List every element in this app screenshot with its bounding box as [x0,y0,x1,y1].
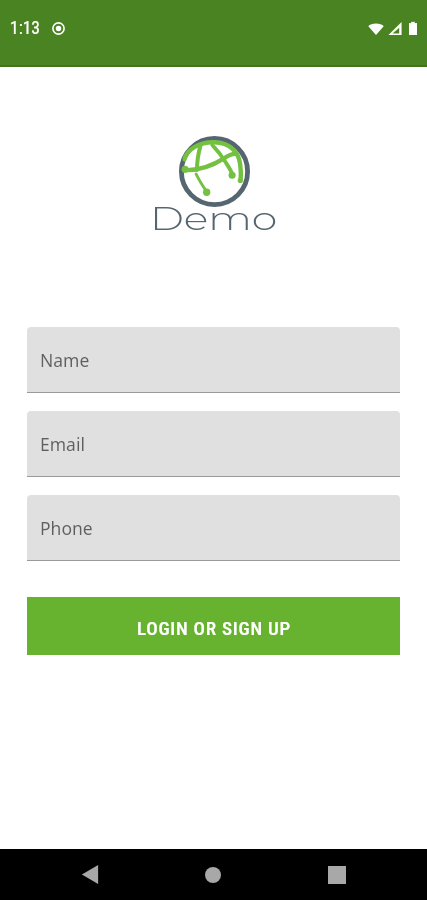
button[interactable]: Email [27,411,400,476]
staticText: Phone [40,516,93,540]
staticText: 1:13 [10,18,41,39]
button[interactable]: Phone [27,495,400,560]
staticText: Name [40,348,90,372]
staticText: Email [40,432,85,456]
staticText: Demo [150,199,278,238]
staticText: LOGIN OR SIGN UP [137,617,291,639]
button[interactable]: Name [27,327,400,392]
button[interactable]: Recents [317,849,357,900]
button[interactable]: Back [70,849,110,900]
button[interactable]: LOGIN OR SIGN UP [27,597,400,655]
button[interactable]: Home [193,849,233,900]
